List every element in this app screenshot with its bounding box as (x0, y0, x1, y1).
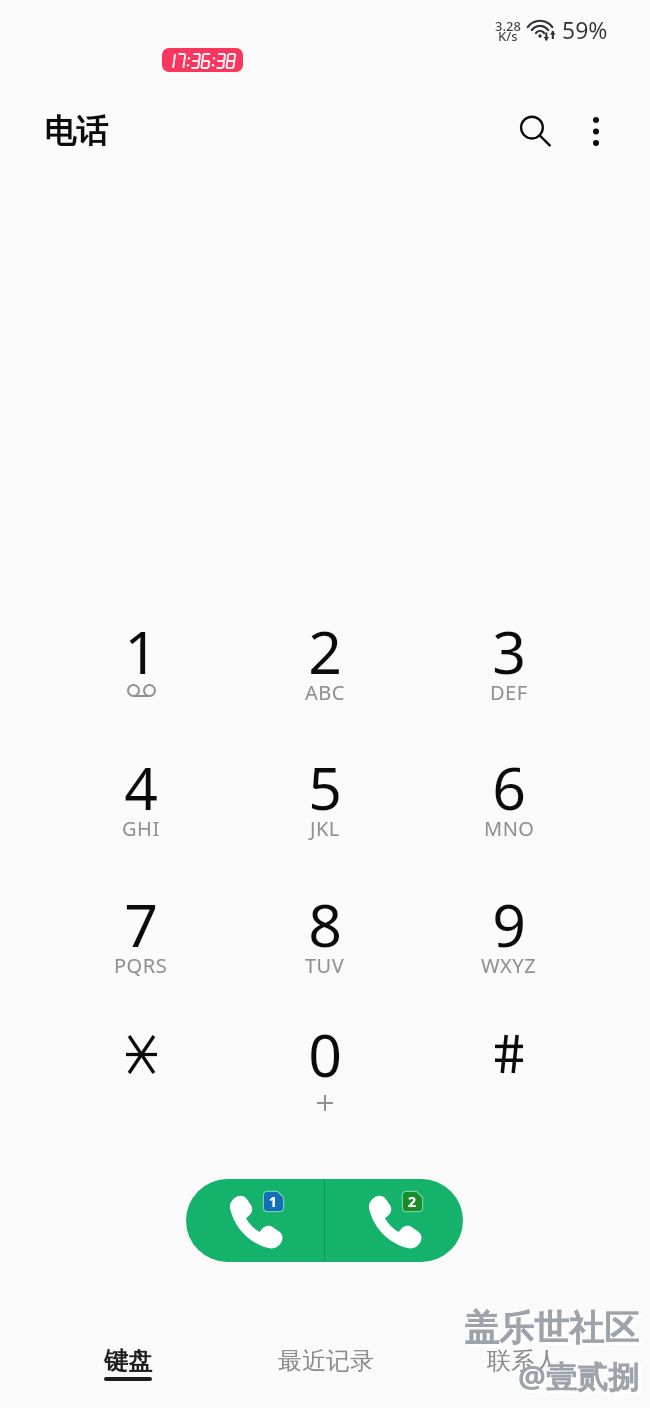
button[interactable]: Search (505, 101, 565, 161)
button[interactable]: 6 (417, 736, 601, 873)
button[interactable]: More options (566, 101, 626, 161)
button[interactable]: 9 (417, 873, 601, 1003)
button[interactable]: 1 (49, 600, 233, 736)
button[interactable]: 最近记录 (227, 1330, 424, 1400)
staticText: 2 (308, 611, 342, 691)
staticText: DEF (490, 679, 528, 706)
button[interactable]: 3 (417, 600, 601, 736)
staticText: 5 (308, 747, 342, 827)
staticText: 盖乐世社区 (464, 1306, 639, 1350)
button[interactable]: 2 (233, 600, 417, 736)
staticText: 6 (492, 747, 526, 827)
button[interactable]: 8 (233, 873, 417, 1003)
button[interactable]: 键盘 (29, 1330, 227, 1400)
staticText: WXYZ (481, 952, 537, 979)
staticText: 2 (408, 1192, 417, 1211)
staticText: JKL (310, 815, 340, 842)
staticText: 1 (269, 1192, 278, 1211)
staticText: 4 (124, 747, 158, 827)
button[interactable]: 4 (49, 736, 233, 873)
button[interactable]: 5 (233, 736, 417, 873)
staticText: 3.28 (495, 17, 521, 35)
button[interactable]: 7 (49, 873, 233, 1003)
button[interactable]: Call with SIM 1 (186, 1179, 324, 1262)
staticText: 1 (124, 611, 158, 691)
staticText: 键盘 (104, 1346, 152, 1376)
staticText: 59% (562, 14, 608, 45)
staticText: 3 (492, 611, 526, 691)
staticText: 8 (308, 884, 342, 964)
staticText: 7 (124, 884, 158, 964)
staticText: K/s (498, 27, 518, 45)
staticText: TUV (305, 952, 345, 979)
staticText: 9 (492, 884, 526, 964)
staticText: MNO (484, 815, 535, 842)
button[interactable]: 0 (233, 1003, 417, 1143)
other: Clock 17:36:38 (162, 48, 243, 72)
staticText: ABC (305, 679, 345, 706)
button[interactable]: 联系人 (424, 1330, 621, 1400)
staticText: GHI (122, 815, 160, 842)
staticText: @壹贰捌 (521, 1358, 642, 1400)
staticText: 电话 (44, 111, 108, 151)
staticText: @壹贰捌 (518, 1355, 639, 1397)
staticText: 盖乐世社区 (467, 1309, 642, 1353)
staticText: PQRS (114, 952, 168, 979)
button[interactable] (49, 1003, 233, 1143)
button[interactable]: Call with SIM 2 (325, 1179, 463, 1262)
staticText: 0 (308, 1014, 342, 1094)
staticText: 最近记录 (278, 1346, 374, 1376)
staticText: 联系人 (487, 1346, 559, 1376)
button[interactable] (417, 1003, 601, 1143)
